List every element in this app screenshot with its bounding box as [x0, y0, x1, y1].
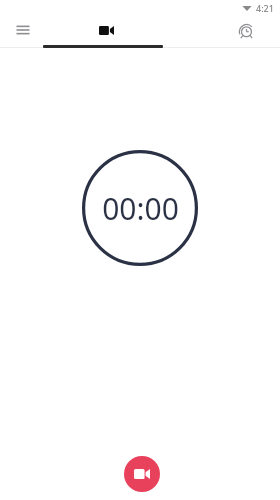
button[interactable]: Menu	[0, 16, 46, 44]
staticText: 4:21	[256, 2, 274, 14]
button[interactable]: Record video	[124, 456, 160, 492]
button[interactable]: Alarm	[212, 16, 280, 44]
button[interactable]: Video	[46, 16, 166, 44]
staticText: 00:00	[102, 188, 179, 229]
button[interactable]: 00:00	[82, 150, 198, 266]
